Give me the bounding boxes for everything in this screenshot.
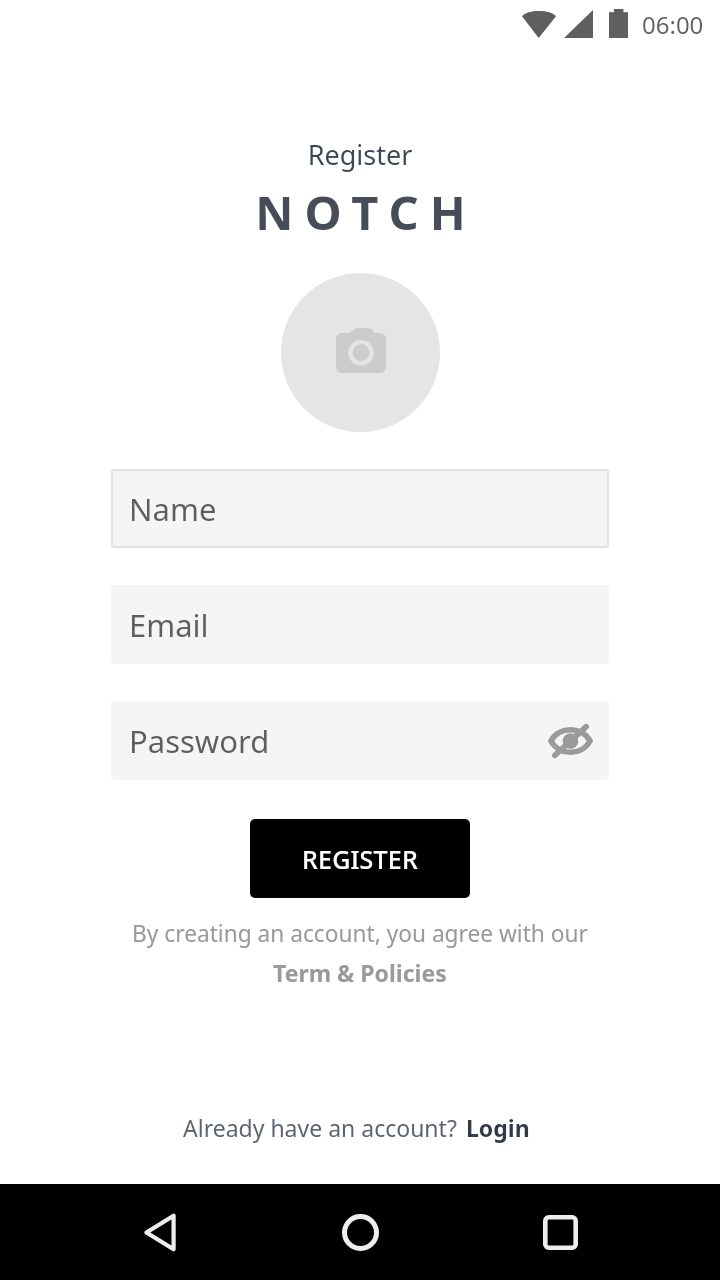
- staticText: Email: [129, 604, 209, 646]
- button[interactable]: Add profile photo: [281, 273, 440, 432]
- button[interactable]: Password: [111, 701, 609, 780]
- staticText: NOTCH: [6, 180, 720, 244]
- button[interactable]: Recent apps: [528, 1200, 592, 1264]
- staticText: Register: [0, 136, 720, 173]
- staticText: Password: [129, 720, 270, 762]
- button[interactable]: Term & Policies: [267, 955, 453, 990]
- staticText: Login: [466, 1112, 530, 1143]
- button[interactable]: Home: [328, 1200, 392, 1264]
- button[interactable]: Back: [128, 1200, 192, 1264]
- staticText: 06:00: [642, 8, 704, 41]
- button[interactable]: Email: [111, 585, 609, 664]
- button[interactable]: Name: [111, 469, 609, 548]
- staticText: Name: [129, 488, 217, 530]
- button[interactable]: Show password: [548, 719, 592, 763]
- button[interactable]: REGISTER: [250, 819, 470, 898]
- button[interactable]: Login: [466, 1112, 530, 1143]
- staticText: By creating an account, you agree with o…: [0, 918, 720, 949]
- staticText: Already have an account?: [183, 1112, 463, 1143]
- staticText: REGISTER: [302, 842, 418, 876]
- staticText: Term & Policies: [273, 957, 447, 988]
